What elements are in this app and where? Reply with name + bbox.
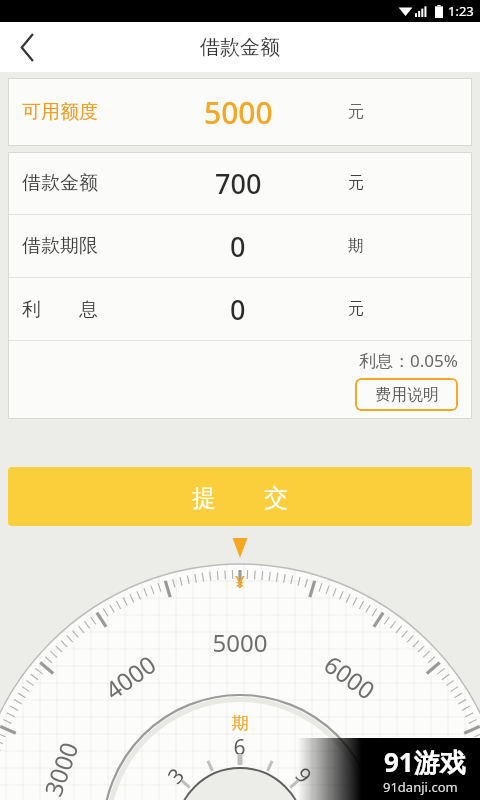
staticText: 700: [215, 165, 262, 202]
staticText: 利 息: [22, 296, 98, 322]
staticText: 费用说明: [375, 385, 439, 405]
button[interactable]: Back: [0, 22, 54, 72]
staticText: 5000: [204, 92, 273, 133]
button[interactable]: 可用额度: [8, 78, 472, 146]
staticText: 1:23: [448, 2, 474, 20]
staticText: 元: [348, 299, 364, 319]
button[interactable]: 利 息: [8, 278, 472, 340]
staticText: 0: [230, 291, 246, 328]
staticText: 借款金额: [22, 171, 98, 195]
staticText: 元: [348, 102, 364, 122]
button[interactable]: 借款金额: [8, 152, 472, 214]
staticText: 可用额度: [22, 100, 98, 124]
staticText: 期: [348, 236, 364, 256]
button[interactable]: 费用说明: [355, 378, 458, 411]
staticText: 利息：0.05%: [359, 349, 458, 372]
button[interactable]: 借款期限: [8, 215, 472, 277]
staticText: 元: [348, 173, 364, 193]
staticText: 借款金额: [200, 35, 280, 60]
button[interactable]: 提 交: [8, 467, 472, 526]
staticText: 借款期限: [22, 234, 98, 258]
staticText: 0: [230, 228, 246, 265]
staticText: 提 交: [192, 480, 288, 513]
